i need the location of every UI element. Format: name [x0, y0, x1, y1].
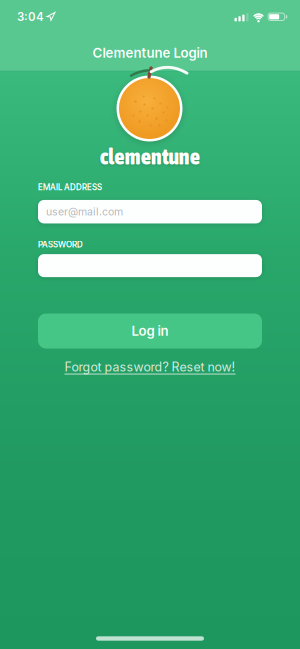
- staticText: EMAIL ADDRESS: [38, 182, 102, 192]
- button[interactable]: Forgot password? Reset now!: [64, 359, 235, 374]
- button[interactable]: Log in: [38, 313, 262, 348]
- staticText: Forgot password? Reset now!: [64, 359, 235, 374]
- staticText: user@mail.com: [46, 205, 123, 218]
- staticText: PASSWORD: [38, 239, 83, 249]
- staticText: Clementune Login: [92, 45, 207, 61]
- button[interactable]: Password: [38, 254, 262, 277]
- staticText: 3:04: [17, 10, 44, 24]
- button[interactable]: Email address: [38, 200, 262, 223]
- staticText: Log in: [131, 323, 168, 339]
- staticText: clementune: [100, 144, 200, 169]
